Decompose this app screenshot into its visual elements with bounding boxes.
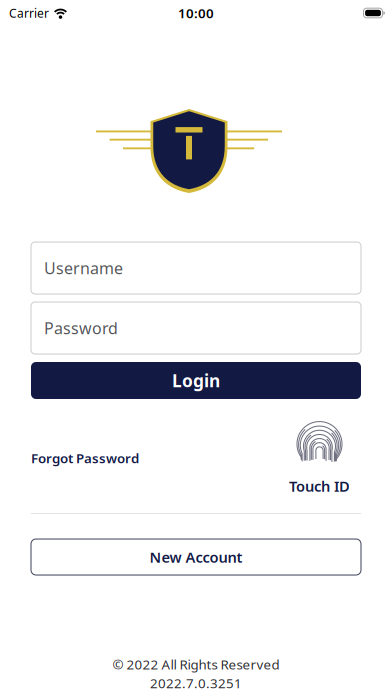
staticText: Password [44,317,118,339]
button[interactable]: Login [31,362,361,399]
staticText: 2022.7.0.3251 [150,674,242,692]
staticText: Carrier [9,5,49,21]
button[interactable]: Password [31,302,361,354]
staticText: Forgot Password [31,449,139,467]
button[interactable]: Username [31,242,361,294]
staticText: Username [44,257,123,279]
staticText: Login [172,369,220,392]
button[interactable]: Forgot Password [31,449,139,467]
button[interactable]: New Account [31,539,361,575]
staticText: Touch ID [289,476,350,496]
staticText: New Account [149,547,242,567]
staticText: © 2022 All Rights Reserved [112,656,279,673]
button[interactable]: Touch ID [289,422,350,496]
staticText: 10:00 [178,4,214,22]
